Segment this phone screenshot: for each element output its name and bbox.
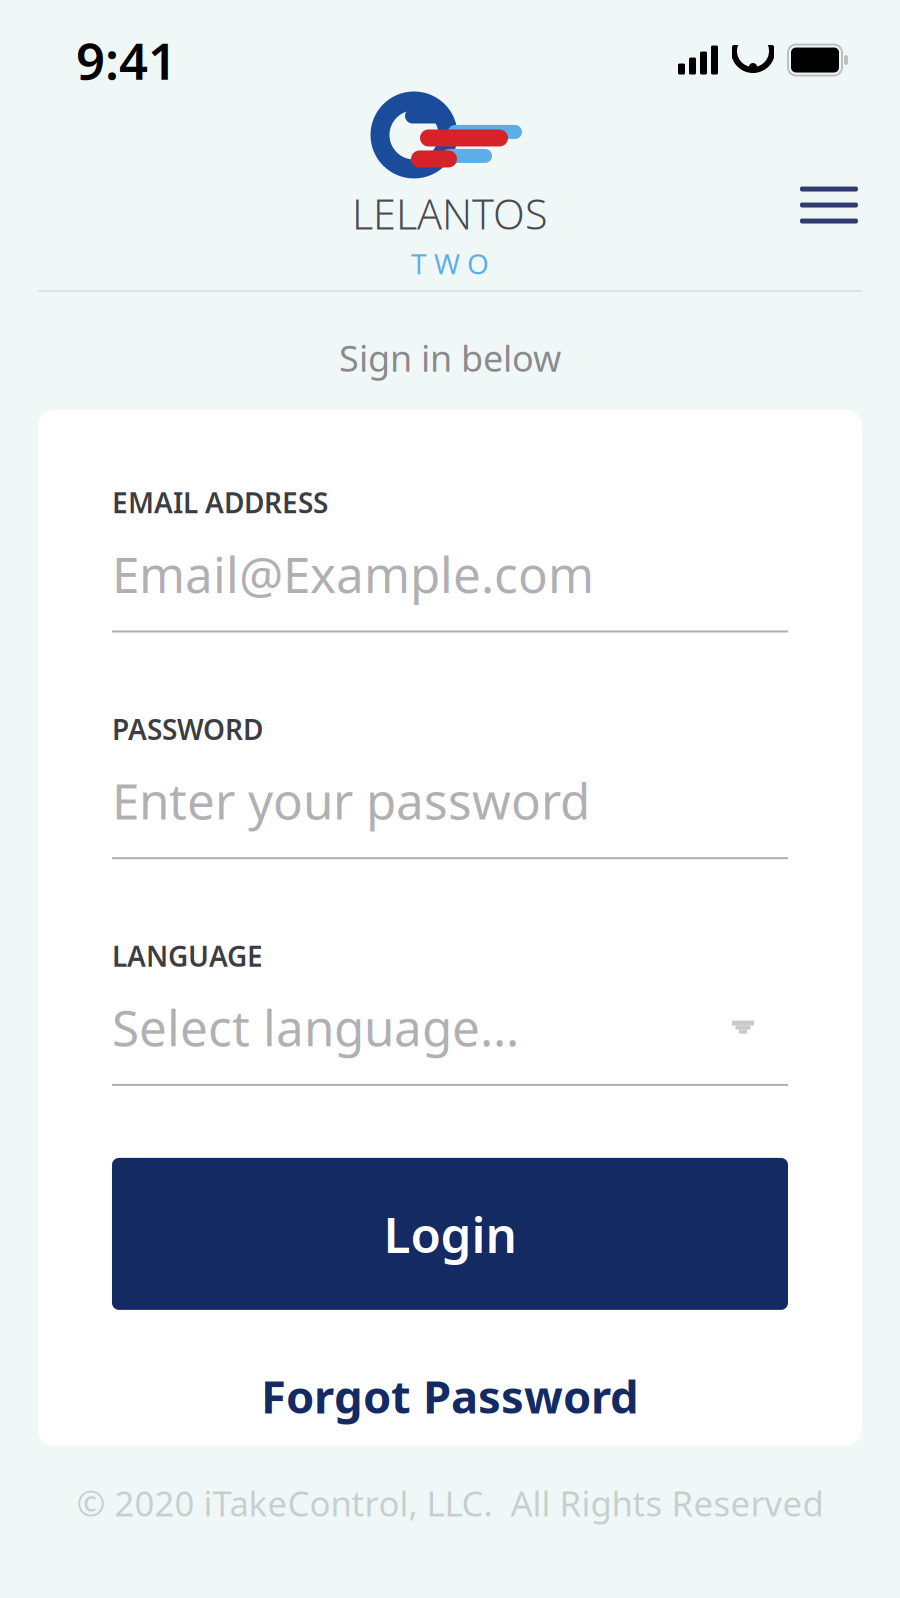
staticText: © 2020 iTakeControl, LLC. All Rights Res…	[76, 1480, 823, 1526]
staticText: Forgot Password	[261, 1366, 639, 1426]
staticText: LELANTOS	[352, 186, 548, 241]
staticText: Login	[383, 1201, 516, 1267]
staticText: PASSWORD	[112, 710, 263, 748]
button[interactable]: Forgot Password	[112, 1350, 788, 1442]
staticText: Select language...	[112, 994, 519, 1060]
button[interactable]: Login	[112, 1158, 788, 1310]
staticText: Enter your password	[112, 768, 590, 833]
staticText: T W O	[411, 245, 489, 282]
staticText: Sign in below	[339, 334, 561, 382]
staticText: 9:41	[76, 26, 177, 94]
staticText: LANGUAGE	[112, 937, 263, 974]
button[interactable]: Menu	[782, 168, 876, 241]
staticText: Email@Example.com	[112, 541, 594, 606]
staticText: EMAIL ADDRESS	[112, 484, 328, 521]
